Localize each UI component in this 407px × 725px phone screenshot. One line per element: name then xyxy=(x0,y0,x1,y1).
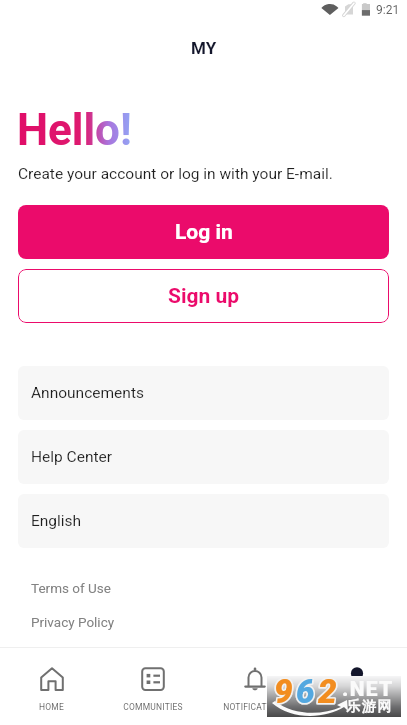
staticText: 9:21 xyxy=(376,3,400,17)
staticText: 2 xyxy=(318,672,340,711)
button[interactable]: Log in xyxy=(18,205,389,259)
staticText: 乐游网 xyxy=(346,698,394,716)
button[interactable]: Home xyxy=(0,648,101,725)
staticText: 9 xyxy=(274,672,296,711)
button[interactable]: English xyxy=(18,494,389,548)
staticText: Hello! xyxy=(17,104,132,156)
staticText: 2 xyxy=(318,672,340,711)
staticText: HOME xyxy=(39,702,64,712)
staticText: 6 xyxy=(296,672,318,711)
staticText: Announcements xyxy=(31,384,144,402)
staticText: Create your account or log in with your … xyxy=(18,165,333,183)
button[interactable]: Terms of Use xyxy=(18,574,148,602)
staticText: 9 xyxy=(274,672,296,711)
staticText: .NET xyxy=(342,677,394,702)
staticText: NOTIFICATIONS xyxy=(223,702,287,712)
staticText: Sign up xyxy=(168,284,240,309)
button[interactable]: Privacy Policy xyxy=(18,608,148,636)
button[interactable]: Help Center xyxy=(18,430,389,484)
button[interactable]: Notifications xyxy=(203,648,305,725)
staticText: COMMUNITIES xyxy=(123,702,183,712)
button[interactable]: Announcements xyxy=(18,366,389,420)
staticText: MY xyxy=(351,702,364,712)
staticText: Log in xyxy=(175,220,233,245)
staticText: Terms of Use xyxy=(31,580,111,596)
staticText: Help Center xyxy=(31,448,113,466)
button[interactable]: Sign up xyxy=(18,269,389,323)
staticText: 6 xyxy=(296,672,318,711)
staticText: Privacy Policy xyxy=(31,614,115,630)
button[interactable]: Communities xyxy=(101,648,203,725)
button[interactable]: My profile xyxy=(305,648,407,725)
staticText: English xyxy=(31,512,82,530)
staticText: MY xyxy=(191,38,217,58)
